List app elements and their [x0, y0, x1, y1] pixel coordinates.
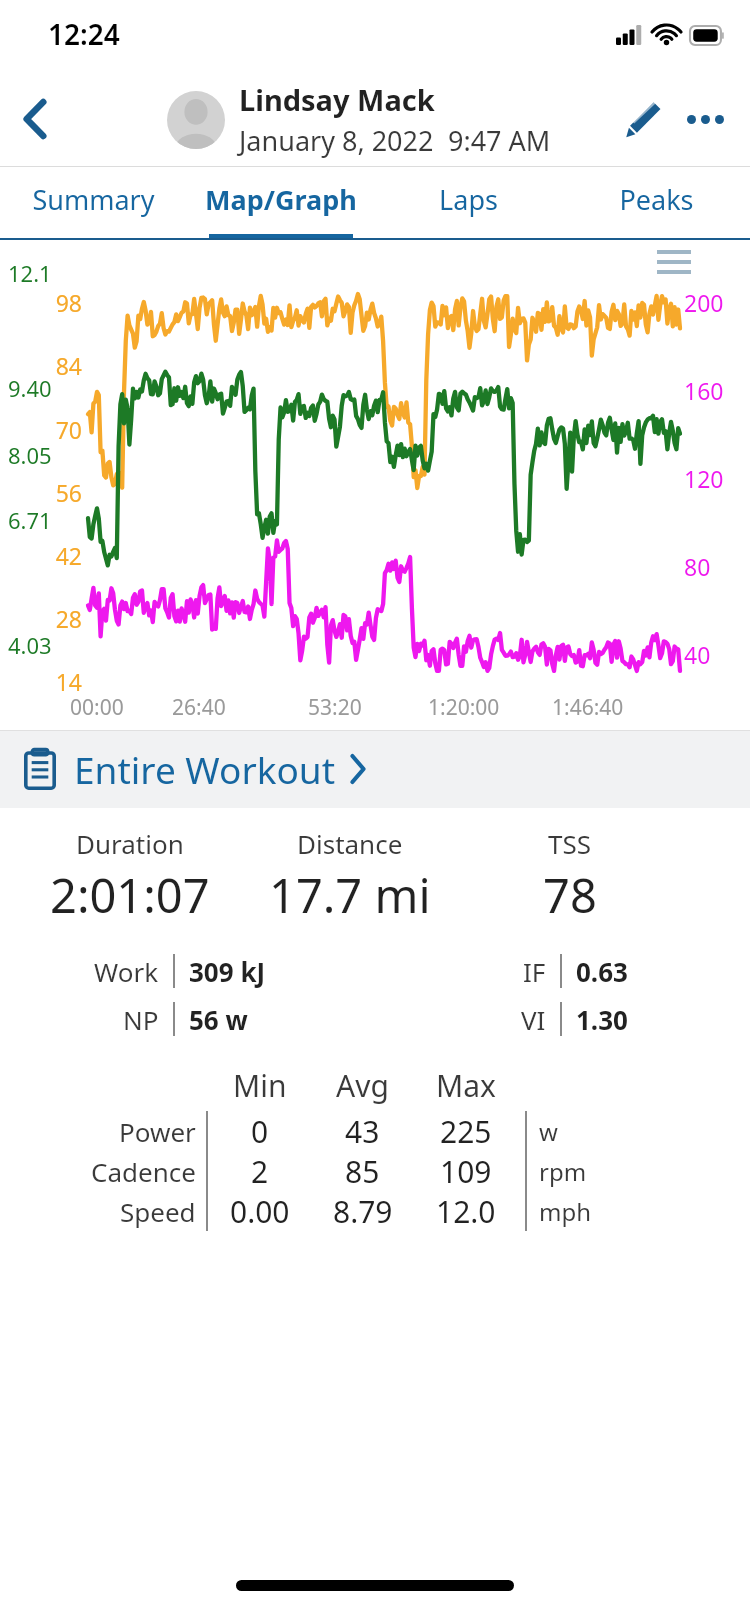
- staticText: 0.00: [230, 1191, 290, 1231]
- staticText: 85: [345, 1151, 380, 1191]
- staticText: 309 kJ: [189, 954, 266, 989]
- staticText: Entire Workout: [74, 744, 336, 794]
- staticText: 53:20: [308, 693, 362, 722]
- staticText: VI: [521, 1002, 546, 1037]
- staticText: 12.0: [436, 1191, 496, 1231]
- staticText: 28: [46, 603, 82, 634]
- staticText: 4.03: [8, 630, 52, 660]
- staticText: 9:47 AM: [448, 122, 551, 159]
- staticText: Summary: [32, 181, 155, 218]
- staticText: 70: [46, 414, 82, 445]
- staticText: 43: [345, 1111, 380, 1151]
- staticText: 1:46:40: [552, 693, 624, 722]
- staticText: 0.63: [576, 954, 628, 989]
- staticText: 120: [684, 463, 724, 494]
- staticText: 160: [684, 375, 724, 406]
- staticText: Distance: [297, 826, 403, 861]
- button[interactable]: Peaks: [562, 167, 750, 240]
- staticText: 8.05: [8, 440, 52, 470]
- staticText: 14: [46, 666, 82, 697]
- staticText: 2: [251, 1151, 269, 1191]
- staticText: 0: [251, 1111, 269, 1151]
- button[interactable]: Entire Workout: [0, 730, 750, 808]
- staticText: Min: [233, 1065, 287, 1106]
- staticText: Laps: [439, 181, 498, 218]
- staticText: 17.7 mi: [269, 863, 431, 927]
- staticText: 9.40: [8, 373, 52, 403]
- staticText: 109: [440, 1151, 492, 1191]
- staticText: 12:24: [48, 15, 120, 53]
- staticText: 0: [46, 728, 82, 759]
- button[interactable]: More options: [674, 88, 736, 150]
- staticText: 84: [46, 350, 82, 381]
- button[interactable]: Summary: [0, 167, 187, 240]
- staticText: 40: [684, 639, 711, 670]
- staticText: TSS: [548, 826, 592, 861]
- staticText: 6.71: [8, 505, 52, 535]
- staticText: 200: [684, 287, 724, 318]
- staticText: 225: [440, 1111, 492, 1151]
- staticText: 80: [684, 551, 711, 582]
- staticText: 0: [684, 727, 698, 758]
- staticText: 1.30: [576, 1002, 628, 1037]
- button[interactable]: Edit: [612, 88, 674, 150]
- staticText: 12.1: [8, 258, 52, 288]
- button[interactable]: Chart options: [648, 242, 700, 282]
- staticText: 1:20:00: [428, 693, 500, 722]
- staticText: Lindsay Mack: [239, 80, 435, 119]
- button[interactable]: Laps: [374, 167, 562, 240]
- staticText: Duration: [76, 826, 184, 861]
- staticText: 98: [46, 287, 82, 318]
- staticText: w: [539, 1115, 558, 1148]
- staticText: Peaks: [619, 181, 694, 218]
- staticText: 2:01:07: [50, 863, 210, 927]
- staticText: Avg: [336, 1065, 389, 1106]
- staticText: Speed: [120, 1194, 196, 1229]
- staticText: 56 w: [189, 1002, 248, 1037]
- staticText: 56: [46, 477, 82, 508]
- staticText: mph: [539, 1195, 592, 1228]
- button[interactable]: Map/Graph: [187, 167, 374, 240]
- staticText: Work: [94, 954, 159, 989]
- staticText: 78: [543, 863, 597, 927]
- staticText: Map/Graph: [205, 181, 357, 218]
- staticText: Power: [119, 1114, 196, 1149]
- staticText: 42: [46, 540, 82, 571]
- staticText: 8.79: [333, 1191, 393, 1231]
- staticText: 00:00: [70, 693, 124, 722]
- staticText: IF: [523, 954, 546, 989]
- staticText: Max: [436, 1065, 496, 1106]
- staticText: January 8, 2022: [239, 122, 434, 159]
- button[interactable]: Back: [8, 91, 64, 147]
- staticText: NP: [123, 1002, 159, 1037]
- staticText: rpm: [539, 1155, 587, 1188]
- staticText: 26:40: [172, 693, 226, 722]
- staticText: Cadence: [91, 1154, 196, 1189]
